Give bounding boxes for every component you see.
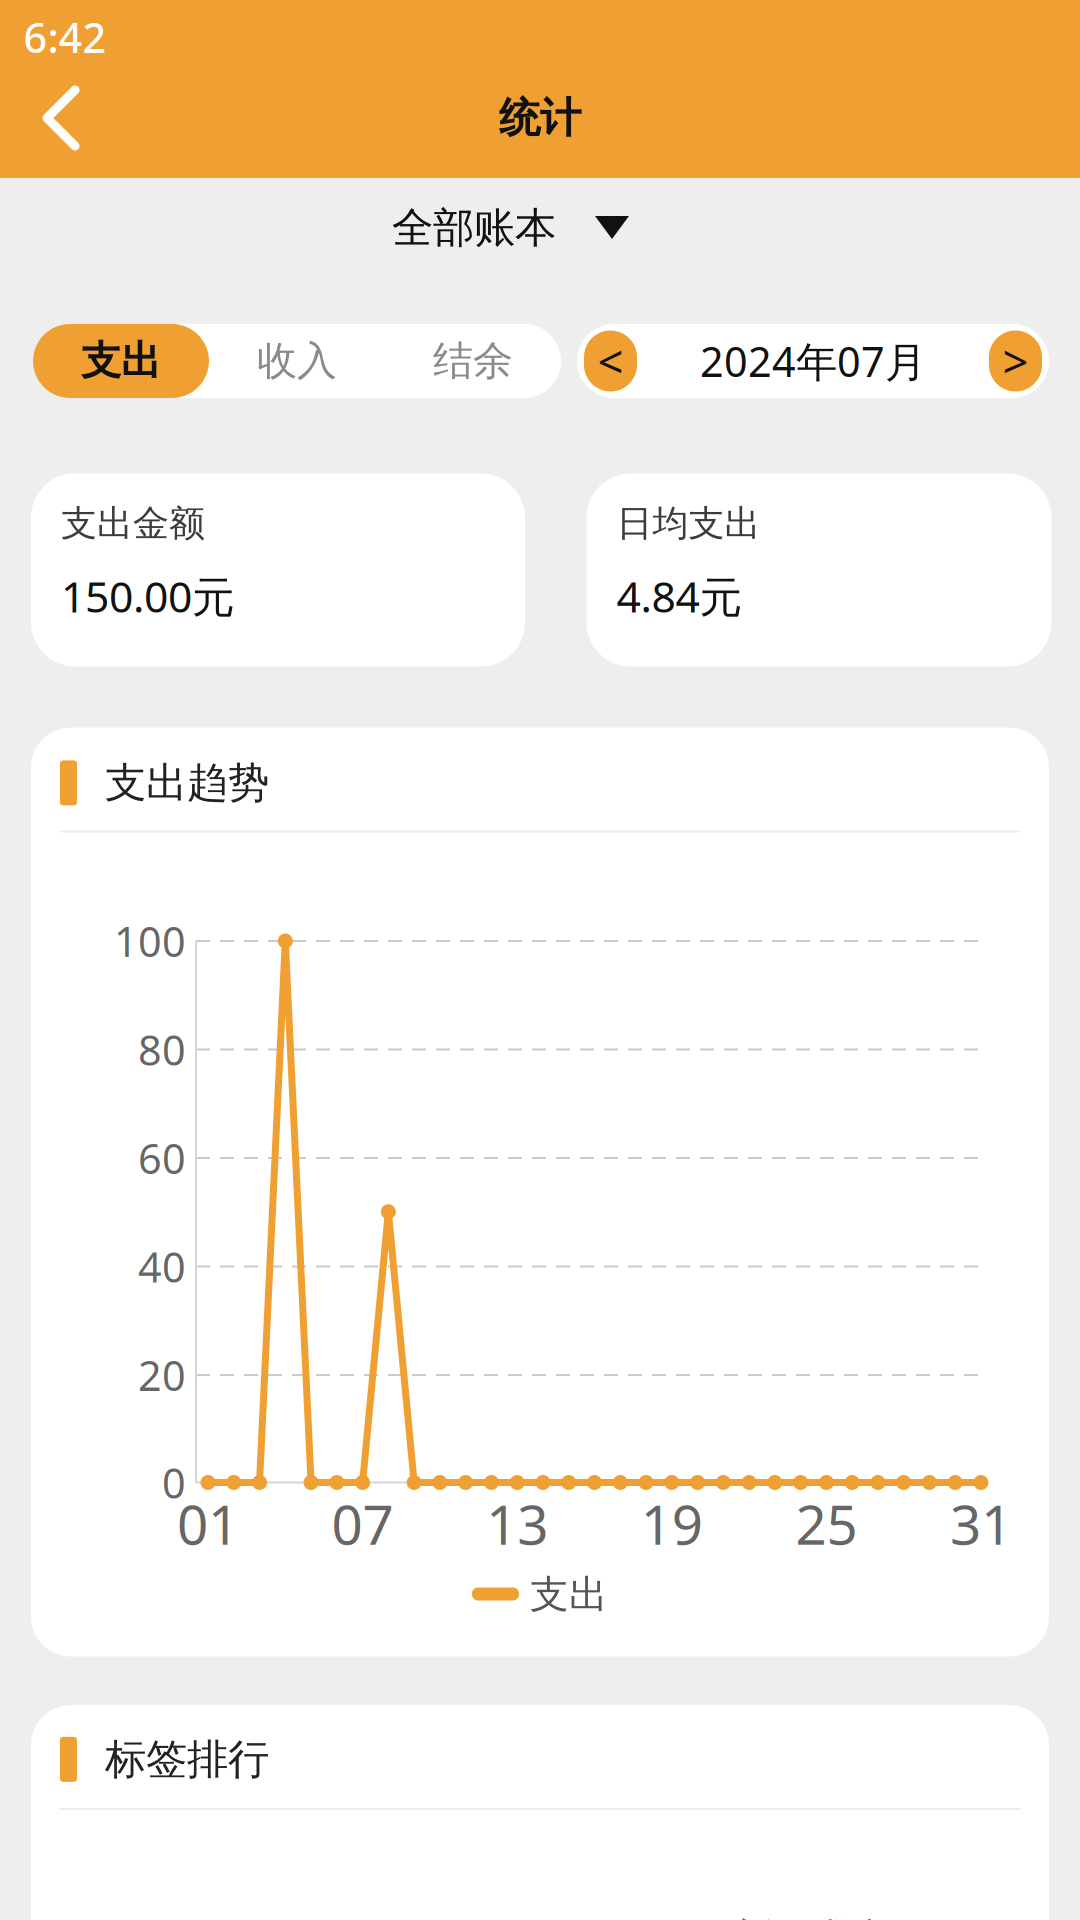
staticText: 0 [162, 1455, 186, 1510]
staticText: 4.84元 [616, 568, 742, 624]
button[interactable]: 全部账本 [392, 203, 630, 253]
staticText: 结余 [433, 336, 513, 385]
staticText: 07 [332, 1487, 394, 1560]
button[interactable]: 收入 [209, 324, 385, 398]
button[interactable]: Back [22, 73, 100, 163]
staticText: 40 [138, 1239, 186, 1294]
staticText: 收入 [257, 336, 337, 385]
staticText: 01 [177, 1487, 239, 1560]
staticText: > [1002, 331, 1028, 391]
staticText: 19 [641, 1487, 703, 1560]
button[interactable]: 结余 [385, 324, 561, 398]
button[interactable]: 支出 [33, 324, 209, 398]
staticText: 60 [138, 1131, 186, 1185]
staticText: 80 [138, 1022, 186, 1077]
staticText: 20 [138, 1348, 186, 1402]
button[interactable]: 上个月 [584, 330, 637, 391]
staticText: 支出 [530, 1571, 608, 1618]
button[interactable]: 下个月 [989, 330, 1042, 391]
staticText: < [597, 331, 623, 391]
staticText: 日均支出 [616, 501, 760, 546]
staticText: 150.00元 [61, 568, 235, 624]
staticText: 支出金额 [61, 501, 205, 546]
staticText: 支出趋势 [105, 757, 269, 808]
staticText: 全部账本 [392, 203, 556, 253]
staticText: 6:42 [23, 10, 106, 64]
staticText: 13 [486, 1487, 548, 1560]
staticText: 100 [114, 914, 186, 968]
staticText: 31 [950, 1487, 1012, 1560]
staticText: 暂无数据 [732, 1913, 904, 1920]
staticText: 支出 [81, 336, 161, 385]
staticText: 2024年07月 [700, 334, 926, 388]
staticText: 25 [795, 1487, 857, 1560]
staticText: 标签排行 [105, 1734, 269, 1785]
staticText: 统计 [499, 93, 581, 143]
